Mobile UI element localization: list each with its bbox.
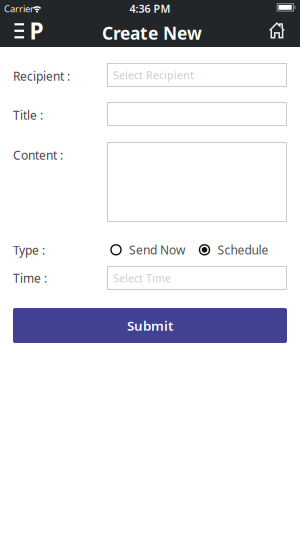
- button[interactable]: Select Recipient: [107, 63, 287, 87]
- staticText: Title :: [13, 107, 43, 123]
- button[interactable]: Content: [107, 142, 287, 222]
- button[interactable]: Title: [107, 102, 287, 126]
- staticText: Recipient :: [13, 68, 70, 84]
- staticText: Carrier: [4, 2, 34, 15]
- staticText: Create New: [102, 21, 202, 44]
- button[interactable]: Menu: [14, 16, 43, 46]
- staticText: Content :: [13, 147, 63, 163]
- staticText: Time :: [13, 270, 47, 286]
- button[interactable]: Select Time: [107, 266, 287, 290]
- button[interactable]: Send Now: [110, 242, 185, 258]
- staticText: 4:36 PM: [129, 2, 170, 16]
- staticText: Select Time: [113, 271, 171, 285]
- button[interactable]: Submit: [13, 308, 287, 343]
- staticText: Type :: [13, 242, 45, 258]
- staticText: Send Now: [129, 242, 185, 258]
- staticText: Submit: [127, 317, 173, 334]
- staticText: Schedule: [217, 242, 268, 258]
- button[interactable]: Schedule: [198, 242, 268, 258]
- button[interactable]: Home: [269, 22, 285, 38]
- staticText: P: [29, 16, 43, 46]
- staticText: Select Recipient: [113, 68, 194, 82]
